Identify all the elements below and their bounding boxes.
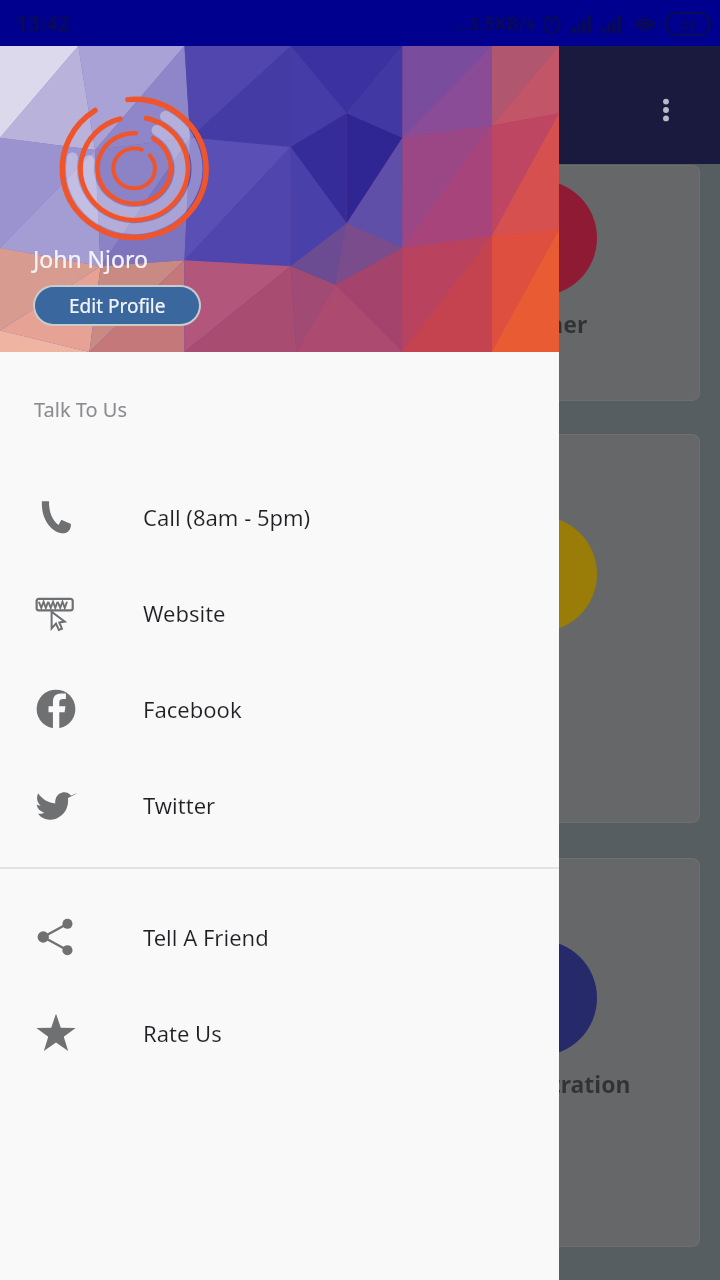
button[interactable]: Website bbox=[0, 565, 559, 661]
staticText: 23 bbox=[680, 15, 697, 34]
staticText: Call (8am - 5pm) bbox=[143, 502, 311, 532]
button[interactable]: Facebook bbox=[0, 661, 559, 757]
staticText: Twitter bbox=[143, 790, 216, 820]
button[interactable]: Edit Profile bbox=[35, 287, 199, 324]
button[interactable]: Twitter bbox=[0, 757, 559, 853]
button[interactable]: Weather bbox=[21, 166, 699, 400]
staticText: Facebook bbox=[143, 694, 242, 724]
staticText: Registration bbox=[489, 1068, 631, 1099]
staticText: John Njoro bbox=[33, 243, 148, 274]
staticText: Rate Us bbox=[143, 1018, 222, 1048]
button[interactable]: Rate Us bbox=[0, 985, 559, 1081]
button[interactable]: Registration bbox=[21, 859, 699, 1246]
staticText: ...3.5KB/s bbox=[454, 11, 536, 36]
button[interactable]: Tell A Friend bbox=[0, 889, 559, 985]
staticText: Tell A Friend bbox=[143, 922, 269, 952]
button[interactable]: News bbox=[21, 435, 699, 822]
staticText: Website bbox=[143, 598, 226, 628]
button[interactable]: More options bbox=[642, 86, 690, 134]
staticText: 13:42 bbox=[16, 9, 70, 38]
staticText: Talk To Us bbox=[34, 396, 127, 423]
staticText: Edit Profile bbox=[69, 293, 166, 319]
staticText: Weather bbox=[489, 308, 588, 339]
button[interactable]: Call (8am - 5pm) bbox=[0, 469, 559, 565]
